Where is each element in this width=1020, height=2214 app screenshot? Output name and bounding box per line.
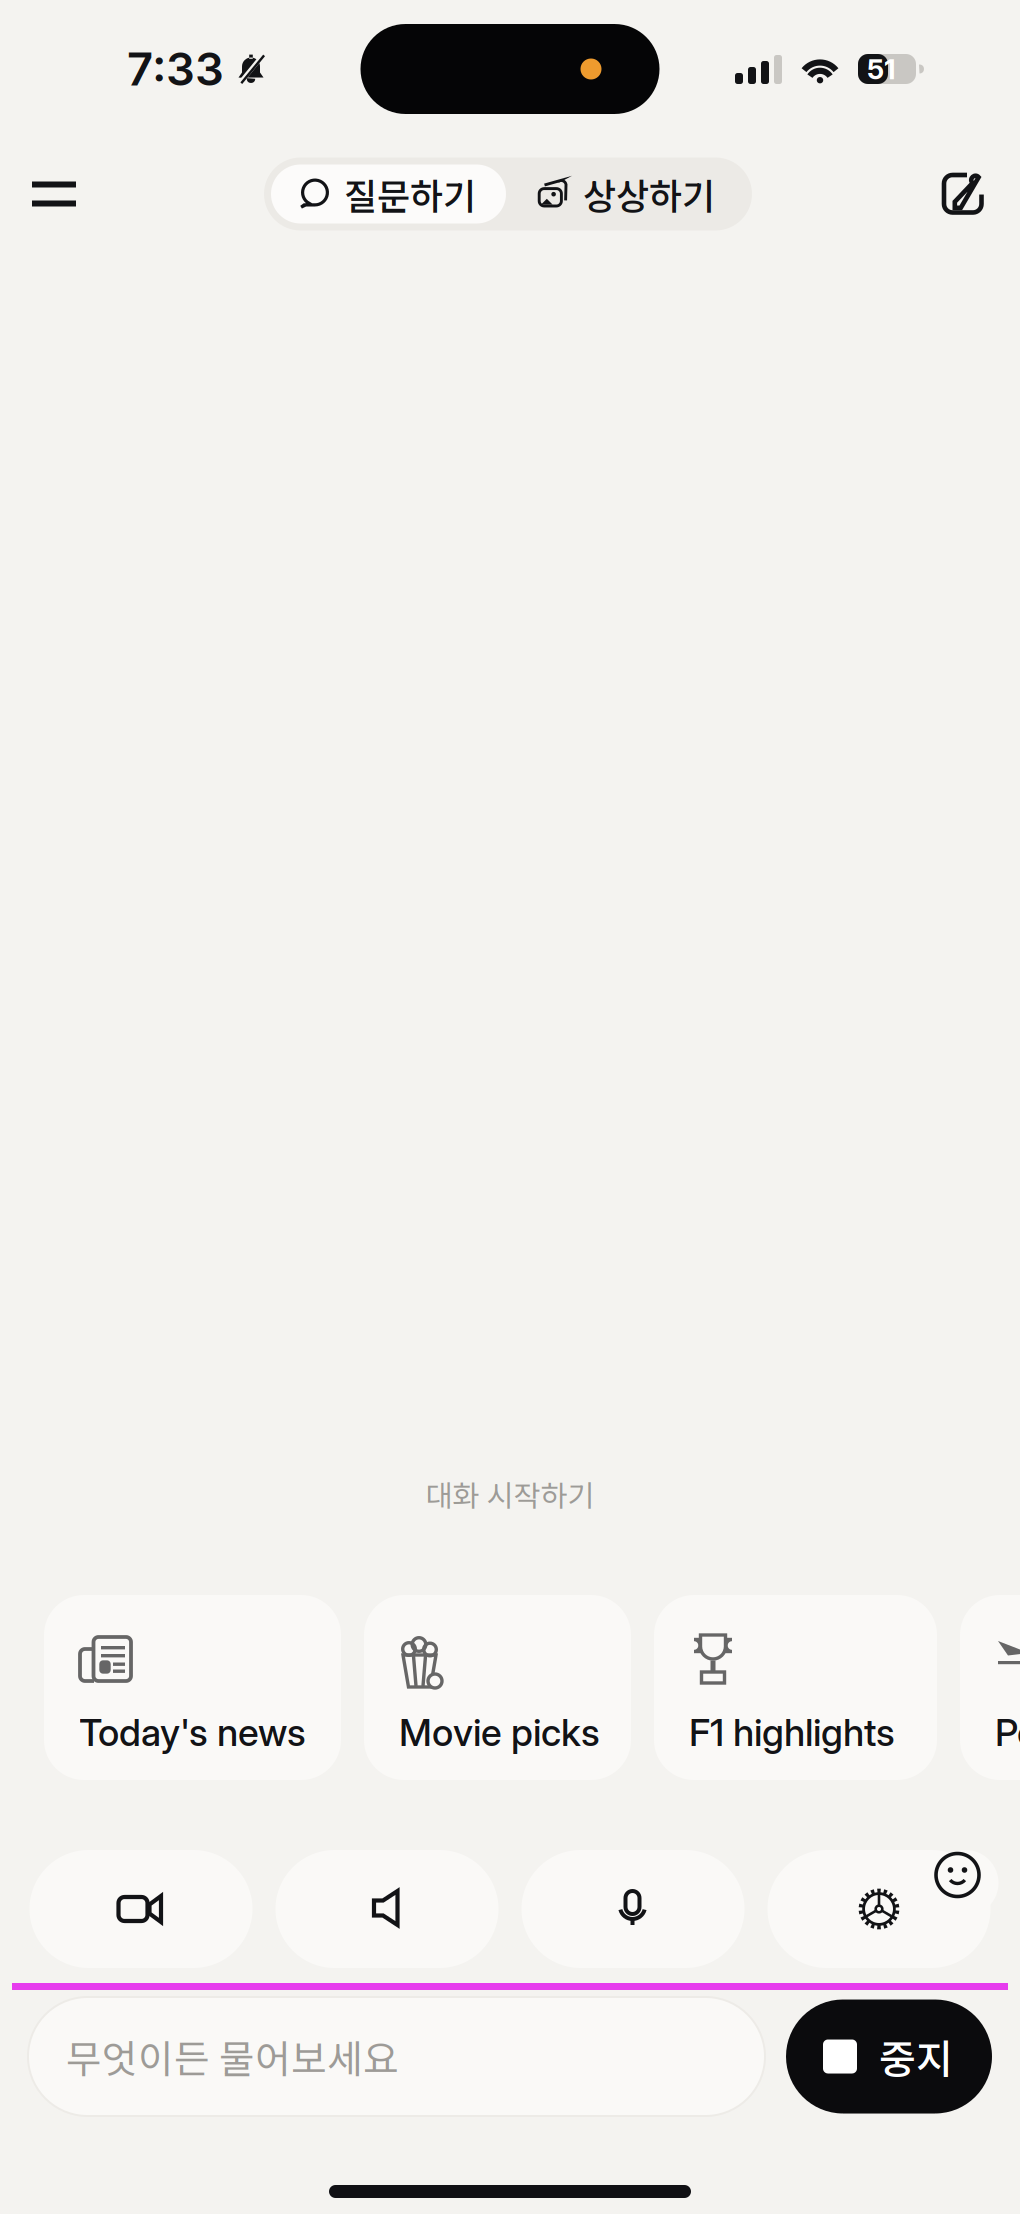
button[interactable]: Video: [29, 1850, 252, 1968]
button[interactable]: Emoji: [932, 1850, 1017, 1916]
button[interactable]: Today's news: [44, 1595, 341, 1780]
button[interactable]: 중지: [786, 1999, 992, 2113]
staticText: 7:33: [127, 42, 224, 96]
button[interactable]: Movie picks: [364, 1595, 631, 1780]
button[interactable]: New chat: [922, 150, 1020, 238]
button[interactable]: Menu: [0, 150, 94, 238]
staticText: 질문하기: [344, 168, 476, 220]
button[interactable]: F1 highlights: [654, 1595, 937, 1780]
staticText: Movie picks: [399, 1710, 600, 1755]
button[interactable]: 무엇이든 물어보세요: [28, 1997, 765, 2116]
button[interactable]: 상상하기: [506, 164, 745, 223]
staticText: 상상하기: [583, 168, 715, 220]
staticText: 51: [867, 52, 896, 86]
staticText: 중지: [879, 2027, 953, 2085]
staticText: 대화 시작하기: [425, 1473, 594, 1515]
staticText: 무엇이든 물어보세요: [66, 2028, 399, 2084]
button[interactable]: Speaker: [275, 1850, 498, 1968]
staticText: Pour: [995, 1710, 1020, 1755]
button[interactable]: Pour: [960, 1595, 1020, 1780]
button[interactable]: Tools: [767, 1850, 990, 1968]
button[interactable]: Microphone: [521, 1850, 744, 1968]
staticText: Today's news: [79, 1710, 306, 1755]
button[interactable]: 질문하기: [271, 164, 506, 223]
staticText: F1 highlights: [689, 1710, 895, 1755]
